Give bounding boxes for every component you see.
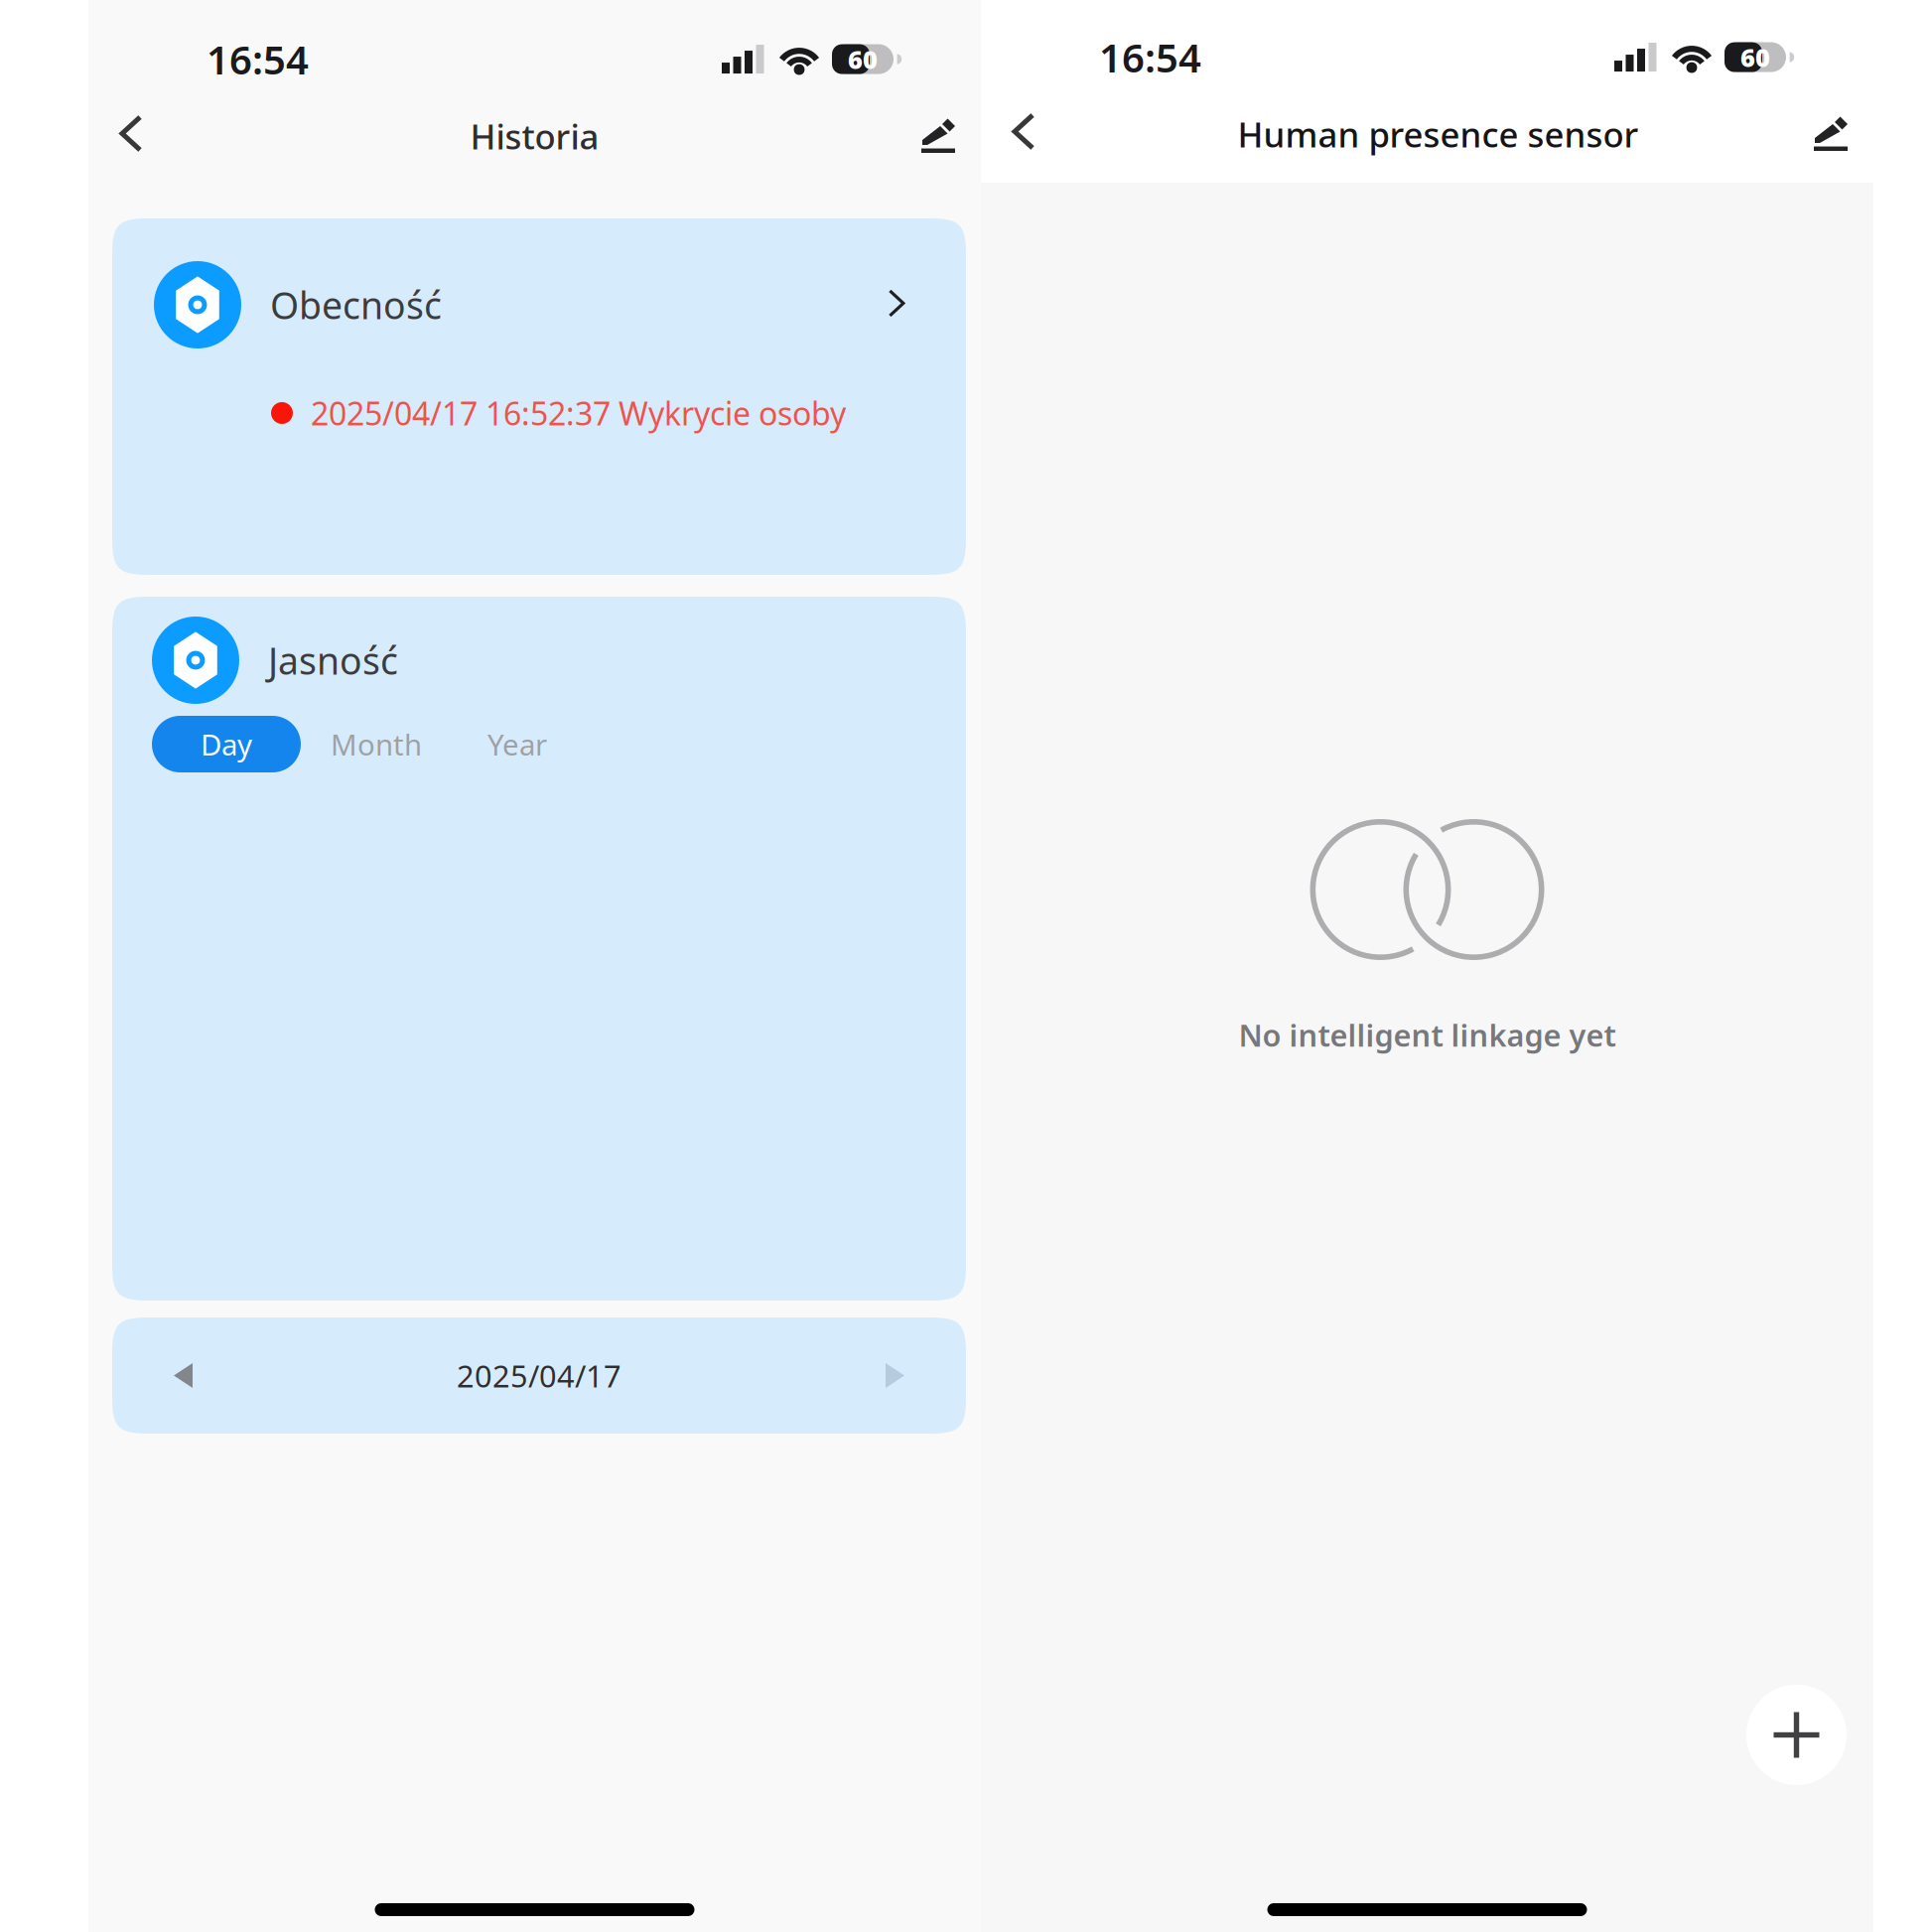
button[interactable]: Previous day [112, 1317, 271, 1434]
staticText: Jasność [268, 636, 398, 685]
button[interactable]: Add [1746, 1685, 1847, 1785]
staticText: 16:54 [1099, 31, 1201, 83]
staticText: Obecność [270, 280, 442, 329]
button[interactable]: Edit [1744, 91, 1873, 177]
staticText: 60 [1740, 40, 1770, 74]
button[interactable]: Obecność [112, 218, 966, 575]
staticText: 2025/04/17 16:52:37 Wykrycie osoby [311, 392, 846, 434]
button[interactable]: Edit [852, 93, 981, 179]
staticText: No intelligent linkage yet [1239, 1015, 1616, 1055]
staticText: Month [331, 725, 422, 763]
staticText: Day [201, 725, 252, 763]
staticText: 16:54 [207, 33, 309, 85]
button[interactable]: Month [301, 716, 452, 772]
staticText: Historia [470, 113, 599, 159]
button[interactable]: Back [981, 91, 1132, 177]
button[interactable]: Year [452, 716, 583, 772]
staticText: 2025/04/17 [457, 1355, 621, 1396]
button[interactable]: Day [152, 716, 301, 772]
staticText: Year [487, 725, 547, 763]
button[interactable]: Next day [807, 1317, 966, 1434]
staticText: 60 [848, 42, 878, 76]
button[interactable]: Back [88, 93, 217, 179]
staticText: Human presence sensor [1238, 111, 1639, 157]
